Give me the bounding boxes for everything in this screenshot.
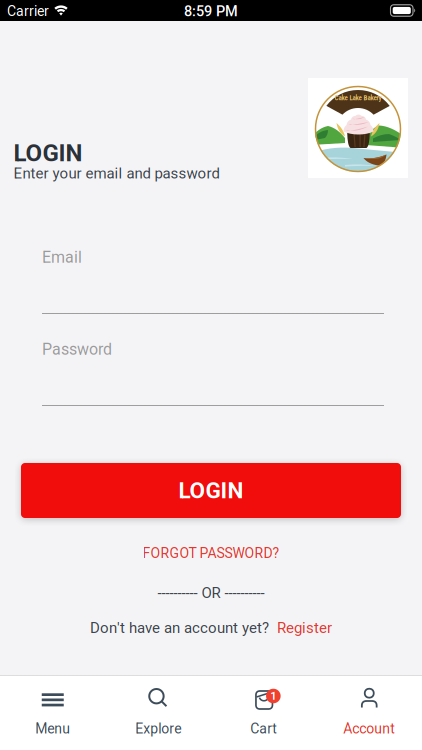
staticText: Don't have an account yet? bbox=[90, 619, 269, 637]
button[interactable]: Account bbox=[316, 675, 422, 750]
button[interactable]: Menu bbox=[0, 675, 105, 750]
staticText: FORGOT PASSWORD? bbox=[142, 545, 279, 561]
staticText: Explore bbox=[135, 720, 181, 737]
button[interactable]: 1 bbox=[211, 675, 316, 750]
staticText: 1 bbox=[270, 690, 276, 702]
staticText: Email bbox=[42, 248, 82, 267]
button[interactable]: Register bbox=[277, 619, 332, 637]
button[interactable]: Explore bbox=[105, 675, 211, 750]
staticText: ---------- OR ---------- bbox=[157, 584, 264, 602]
staticText: Password bbox=[42, 340, 112, 359]
staticText: Menu bbox=[35, 720, 70, 737]
button[interactable]: FORGOT PASSWORD? bbox=[142, 545, 279, 561]
staticText: Enter your email and password bbox=[13, 164, 219, 182]
staticText: Cart bbox=[250, 720, 277, 737]
button[interactable]: LOGIN bbox=[21, 463, 401, 518]
staticText: Carrier bbox=[7, 3, 49, 19]
button[interactable]: Password bbox=[42, 340, 384, 408]
staticText: Register bbox=[277, 619, 332, 637]
staticText: Account bbox=[343, 720, 395, 737]
staticText: 8:59 PM bbox=[184, 3, 238, 20]
staticText: LOGIN bbox=[13, 139, 82, 167]
staticText: LOGIN bbox=[178, 477, 243, 504]
button[interactable]: Email bbox=[42, 248, 384, 316]
staticText: Cake Lake Bakery bbox=[334, 94, 381, 102]
